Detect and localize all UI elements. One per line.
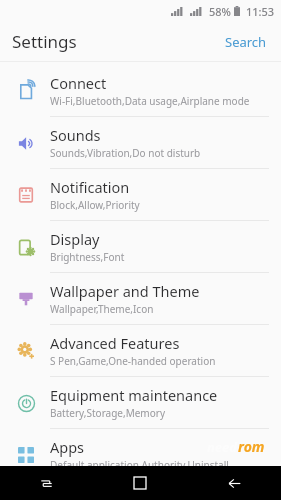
staticText: Block,Allow,Priority <box>50 198 140 212</box>
button[interactable]: Equipment maintenance <box>0 377 281 428</box>
staticText: 58% <box>209 4 231 19</box>
staticText: Sounds <box>50 125 101 145</box>
staticText: Wallpaper,Theme,Icon <box>50 302 154 316</box>
staticText: Apps <box>50 437 85 457</box>
button[interactable]: Recents <box>0 466 93 500</box>
staticText: 11:53 <box>246 4 275 19</box>
staticText: Settings <box>12 30 77 53</box>
staticText: Equipment maintenance <box>50 385 218 405</box>
button[interactable]: Advanced Features <box>0 325 281 376</box>
staticText: Brightness,Font <box>50 250 125 264</box>
staticText: Wi-Fi,Bluetooth,Data usage,Airplane mode <box>50 94 250 108</box>
button[interactable]: Back <box>187 466 281 500</box>
button[interactable]: Display <box>0 221 281 272</box>
staticText: Advanced Features <box>50 333 180 353</box>
staticText: Default application,Authority,Uninstall <box>50 458 229 472</box>
staticText: Wallpaper and Theme <box>50 281 200 301</box>
staticText: Display <box>50 229 100 249</box>
button[interactable]: Wallpaper and Theme <box>0 273 281 324</box>
button[interactable]: Notification <box>0 169 281 220</box>
button[interactable]: Sounds <box>0 117 281 168</box>
button[interactable]: Search <box>221 27 271 57</box>
staticText: Notification <box>50 177 130 197</box>
button[interactable]: Connect <box>0 65 281 116</box>
button[interactable]: Home <box>93 466 187 500</box>
staticText: Sounds,Vibration,Do not disturb <box>50 146 201 160</box>
staticText: S Pen,Game,One-handed operation <box>50 354 216 368</box>
staticText: Search <box>225 33 267 51</box>
staticText: Battery,Storage,Memory <box>50 406 165 420</box>
staticText: Connect <box>50 73 107 93</box>
button[interactable]: Apps <box>0 429 281 480</box>
staticText: rom <box>238 437 265 456</box>
